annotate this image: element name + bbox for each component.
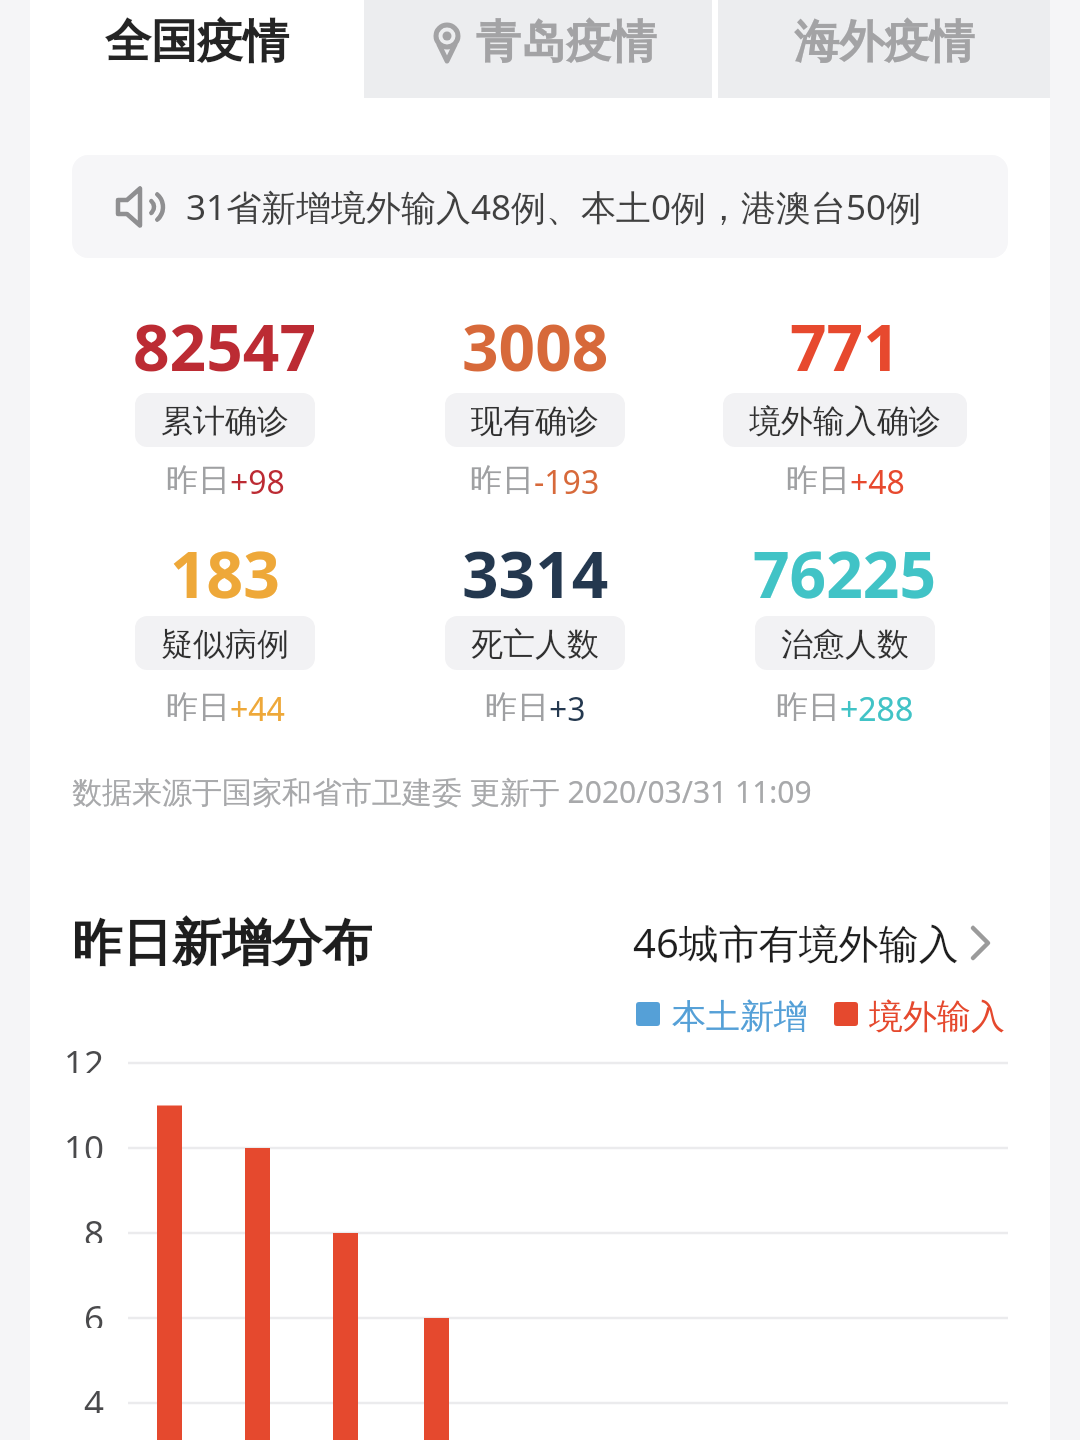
button[interactable]: 青岛疫情 xyxy=(364,0,712,98)
staticText: 昨日新增分布 xyxy=(72,912,372,972)
staticText: 3314 xyxy=(462,530,609,604)
staticText: 青岛疫情 xyxy=(476,14,656,71)
staticText: 现有确诊 xyxy=(471,401,599,439)
button[interactable]: 31省新增境外输入48例、本土0例，港澳台50例 xyxy=(72,155,1008,258)
staticText: 昨日 xyxy=(485,687,549,721)
button[interactable]: 46城市有境外输入 xyxy=(633,912,991,972)
staticText: -193 xyxy=(534,460,600,494)
staticText: 境外输入 xyxy=(869,995,1005,1033)
staticText: +98 xyxy=(230,460,285,494)
staticText: +288 xyxy=(840,687,914,721)
staticText: 46城市有境外输入 xyxy=(633,915,959,970)
staticText: 数据来源于国家和省市卫建委 更新于 2020/03/31 11:09 xyxy=(72,771,812,811)
staticText: 昨日 xyxy=(776,687,840,721)
staticText: 82547 xyxy=(133,303,317,377)
staticText: 全国疫情 xyxy=(105,13,289,71)
staticText: 死亡人数 xyxy=(471,624,599,662)
staticText: 海外疫情 xyxy=(794,14,974,71)
staticText: 疑似病例 xyxy=(161,624,289,662)
staticText: 10 xyxy=(64,1124,105,1158)
staticText: 8 xyxy=(84,1209,105,1243)
staticText: 6 xyxy=(84,1294,105,1328)
staticText: 12 xyxy=(64,1039,105,1073)
button[interactable]: 全国疫情 xyxy=(30,0,364,98)
staticText: 3008 xyxy=(462,303,609,377)
staticText: 昨日 xyxy=(166,687,230,721)
staticText: 76225 xyxy=(753,530,937,604)
staticText: +48 xyxy=(850,460,905,494)
button[interactable]: 海外疫情 xyxy=(718,0,1050,98)
staticText: 昨日 xyxy=(786,460,850,494)
staticText: 本土新增 xyxy=(672,995,808,1033)
staticText: 183 xyxy=(170,530,280,604)
staticText: 771 xyxy=(790,303,900,377)
staticText: 4 xyxy=(84,1379,105,1413)
staticText: +3 xyxy=(549,687,586,721)
staticText: +44 xyxy=(230,687,285,721)
staticText: 治愈人数 xyxy=(781,624,909,662)
staticText: 境外输入确诊 xyxy=(749,401,941,439)
staticText: 昨日 xyxy=(166,460,230,494)
staticText: 累计确诊 xyxy=(161,401,289,439)
staticText: 31省新增境外输入48例、本土0例，港澳台50例 xyxy=(186,183,922,231)
staticText: 昨日 xyxy=(470,460,534,494)
